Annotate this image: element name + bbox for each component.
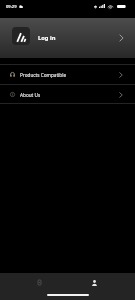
button[interactable]: Documents	[28, 274, 50, 291]
button[interactable]: About Us	[0, 85, 135, 104]
staticText: 09:29	[6, 4, 17, 10]
button[interactable]: Profile	[83, 274, 105, 291]
staticText: Log in	[38, 34, 56, 42]
staticText: Products Compatible	[20, 72, 67, 78]
staticText: About Us	[20, 92, 41, 98]
button[interactable]: Products Compatible	[0, 65, 135, 84]
button[interactable]: Log in	[0, 18, 135, 58]
